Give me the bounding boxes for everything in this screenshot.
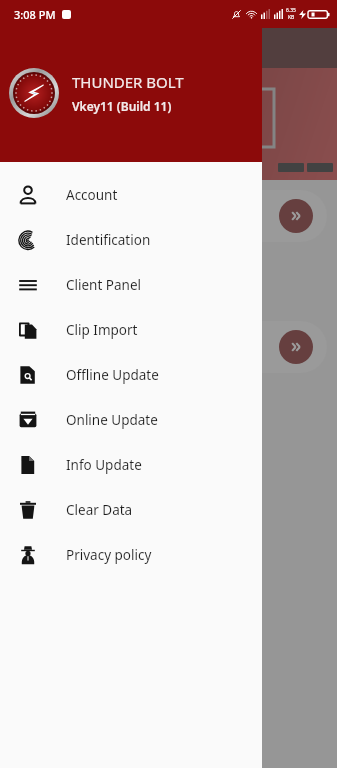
staticText: 6.35 — [286, 7, 296, 14]
staticText: NOLOGY — [158, 109, 231, 132]
staticText: Clear Data — [66, 501, 133, 519]
staticText: THUNDER BOLT — [72, 72, 184, 92]
staticText: Account — [66, 186, 118, 204]
button[interactable]: Online Update — [0, 397, 262, 442]
staticText: Client Panel — [66, 276, 142, 294]
button[interactable]: Clear Data — [0, 487, 262, 532]
staticText: KB — [288, 14, 295, 21]
button[interactable]: Offline Update — [0, 352, 262, 397]
button[interactable]: Proceed — [279, 199, 313, 233]
button[interactable]: Proceed — [279, 330, 313, 364]
staticText: Identification — [66, 231, 151, 249]
button[interactable]: Client Panel — [0, 262, 262, 307]
button[interactable] — [40, 389, 190, 433]
button[interactable]: Identification — [0, 217, 262, 262]
staticText: Unlock — [24, 338, 73, 357]
staticText: Privacy policy — [66, 546, 152, 564]
staticText: Vkey11 (Build 11) — [72, 98, 172, 114]
staticText: 3:08 PM — [14, 7, 56, 22]
staticText: Clip Import — [66, 321, 138, 339]
button[interactable]: Privacy policy — [0, 532, 262, 577]
button[interactable]: Clip Import — [0, 307, 262, 352]
button[interactable]: Info Update — [0, 442, 262, 487]
staticText: Info Update — [66, 456, 142, 474]
staticText: Offline Update — [66, 366, 159, 384]
staticText: 0:04 — [120, 445, 146, 463]
staticText: Online Update — [66, 411, 158, 429]
button[interactable]: Account — [0, 172, 262, 217]
